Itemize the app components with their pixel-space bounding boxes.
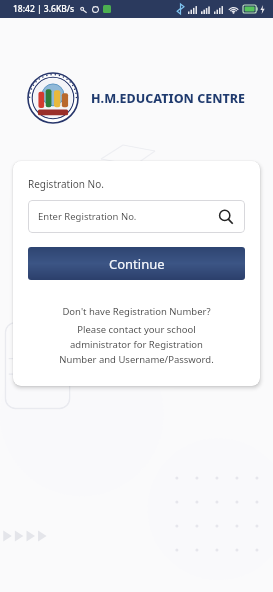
staticText: H.M.EDUCATION CENTRE [91, 90, 245, 107]
staticText: Enter Registration No. [38, 210, 137, 223]
staticText: Continue [109, 255, 165, 273]
staticText: Don't have Registration Number? [62, 305, 211, 318]
staticText: Please contact your school [77, 323, 196, 336]
staticText: Number and Username/Password. [59, 353, 214, 366]
staticText: 18:42 | 3.6KB/s [13, 3, 75, 15]
button[interactable]: Enter Registration No. [28, 200, 245, 233]
staticText: Registration No. [28, 177, 104, 191]
staticText: administrator for Registration [70, 338, 203, 351]
button[interactable]: Search [217, 208, 235, 226]
button[interactable]: Continue [28, 247, 245, 280]
